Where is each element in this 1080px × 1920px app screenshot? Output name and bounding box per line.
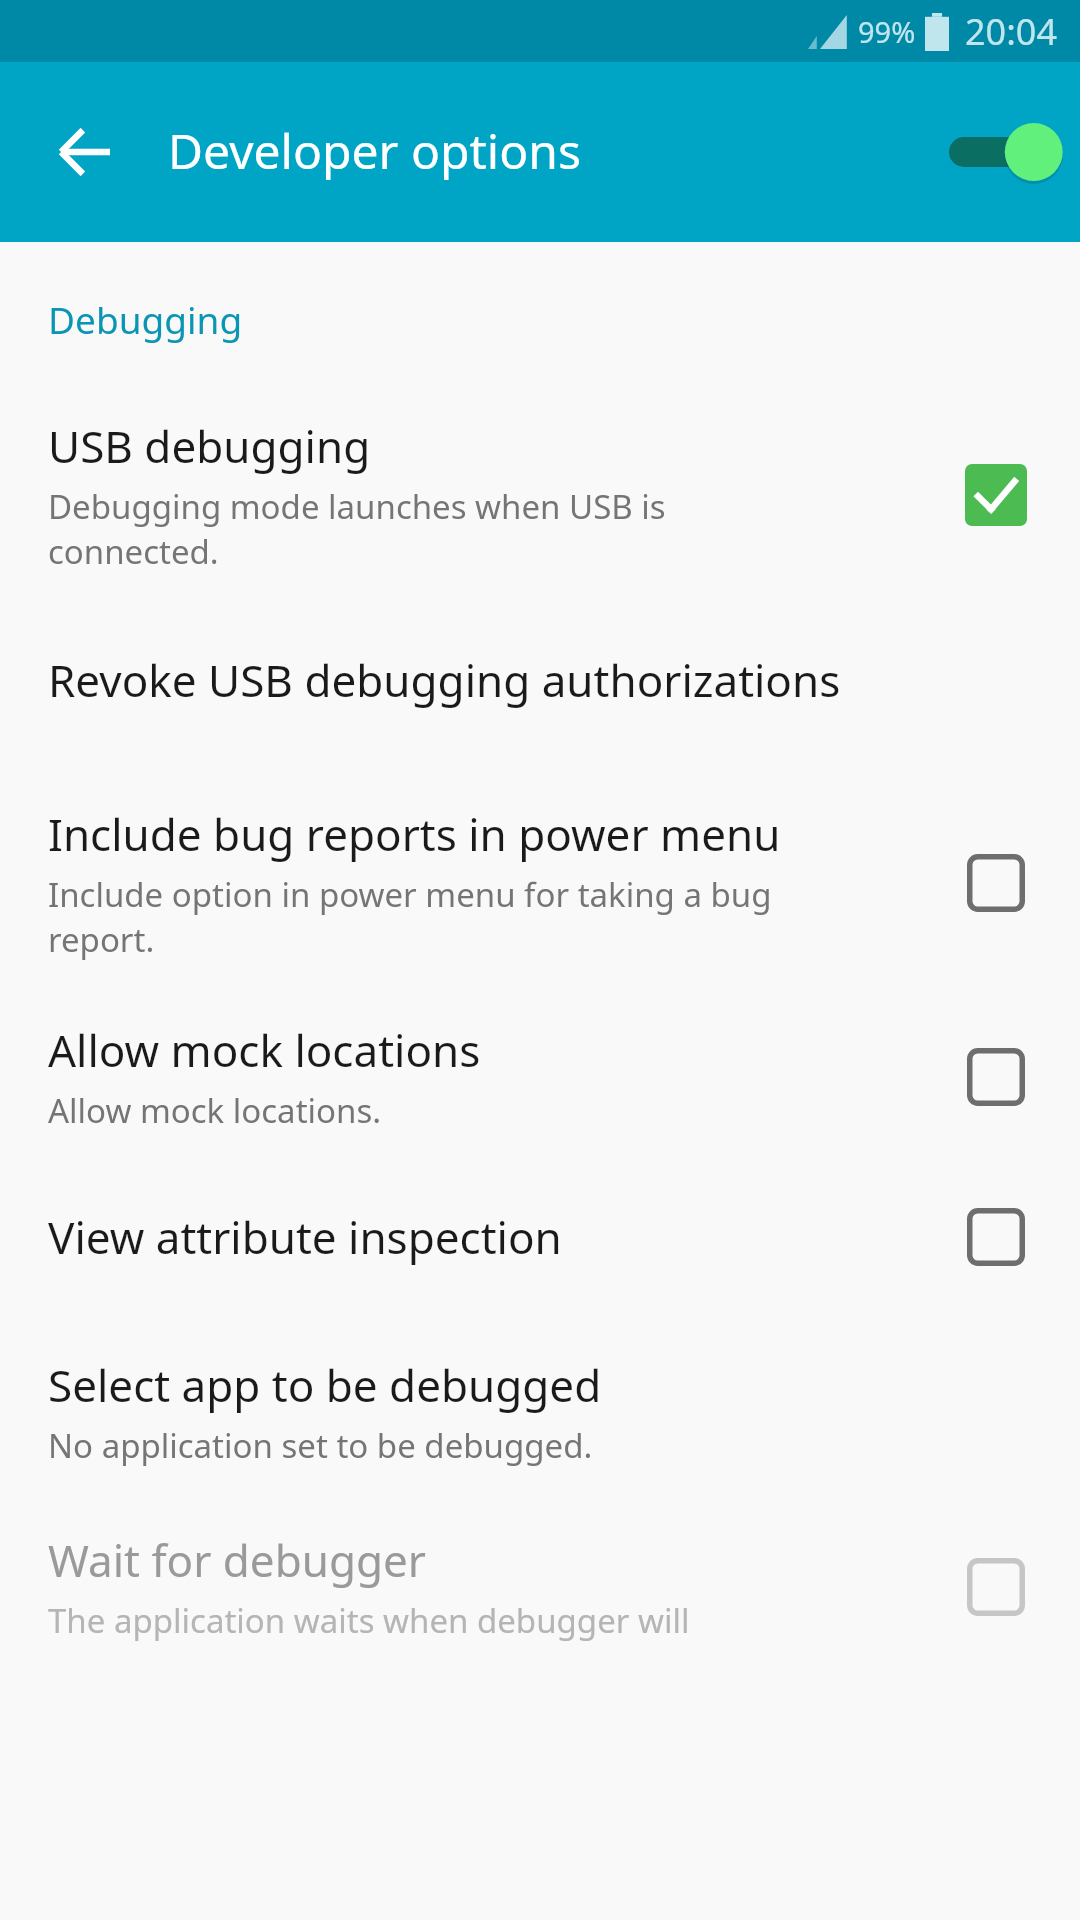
button[interactable]: Include bug reports in power menu	[0, 804, 1080, 962]
button[interactable]: Select app to be debugged	[0, 1355, 1080, 1468]
button[interactable]: Unchecked	[967, 1558, 1025, 1616]
button[interactable]: View attribute inspection	[0, 1191, 1080, 1283]
button[interactable]: Toggle developer options	[904, 104, 1054, 200]
staticText: No application set to be debugged.	[48, 1423, 593, 1468]
staticText: Debugging mode launches when USB is conn…	[48, 484, 666, 574]
staticText: 20:04	[965, 7, 1058, 56]
staticText: The application waits when debugger will	[48, 1598, 690, 1643]
staticText: Debugging	[48, 294, 243, 344]
button[interactable]: USB debugging	[0, 416, 1080, 574]
button[interactable]: Allow mock locations	[0, 1020, 1080, 1133]
staticText: View attribute inspection	[48, 1207, 562, 1267]
staticText: Allow mock locations.	[48, 1088, 382, 1133]
staticText: Include option in power menu for taking …	[48, 872, 772, 962]
staticText: USB debugging	[48, 416, 371, 476]
button[interactable]: Unchecked	[967, 854, 1025, 912]
staticText: Include bug reports in power menu	[48, 804, 781, 864]
button[interactable]: Checked	[965, 464, 1027, 526]
staticText: Revoke USB debugging authorizations	[48, 650, 841, 710]
staticText: Wait for debugger	[48, 1530, 427, 1590]
staticText: Select app to be debugged	[48, 1355, 602, 1415]
button[interactable]: Unchecked	[967, 1208, 1025, 1266]
button[interactable]: Wait for debugger	[0, 1530, 1080, 1643]
staticText: 99%	[858, 12, 916, 51]
staticText: Developer options	[168, 118, 581, 183]
staticText: Allow mock locations	[48, 1020, 481, 1080]
button[interactable]: Revoke USB debugging authorizations	[0, 634, 1080, 726]
button[interactable]: Unchecked	[967, 1048, 1025, 1106]
button[interactable]: Back	[42, 109, 128, 195]
